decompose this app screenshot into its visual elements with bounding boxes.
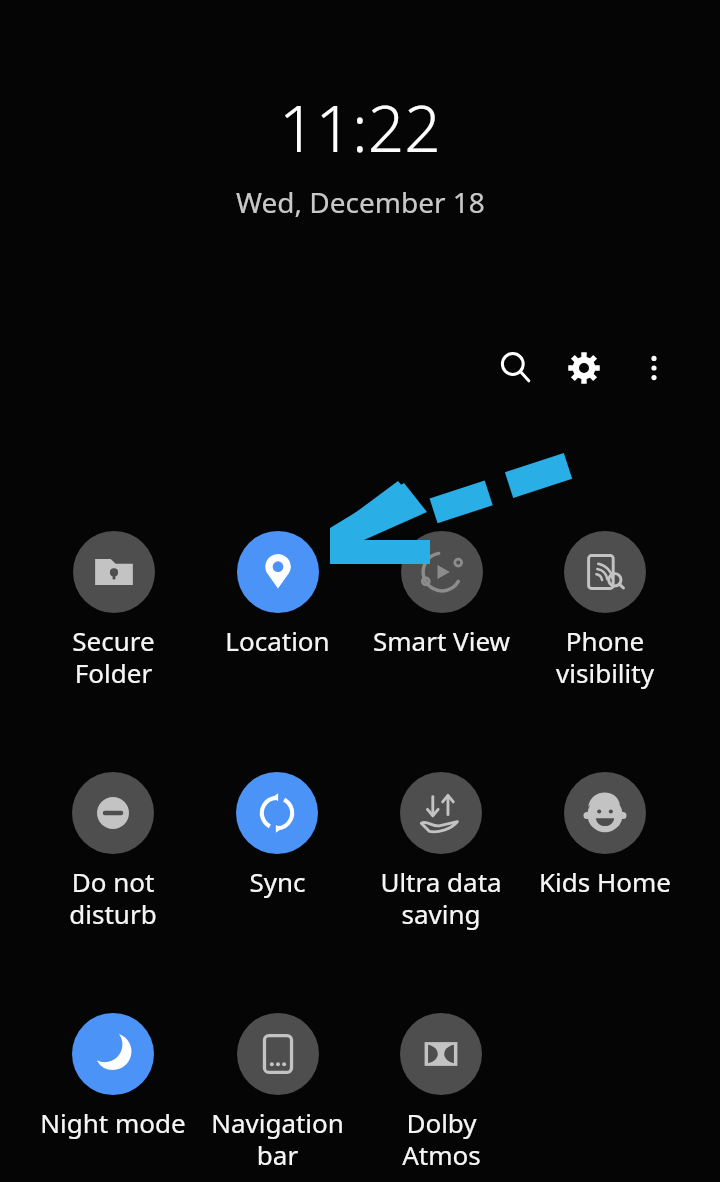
staticText: Ultra data saving bbox=[380, 864, 502, 932]
staticText: Location bbox=[225, 623, 330, 658]
button[interactable]: Night mode bbox=[31, 1013, 195, 1178]
button[interactable]: Smart View bbox=[359, 531, 523, 696]
staticText: Wed, December 18 bbox=[236, 183, 485, 221]
staticText: Navigation bar bbox=[211, 1105, 344, 1173]
button[interactable]: Phone visibility bbox=[523, 531, 687, 696]
button[interactable]: Settings bbox=[556, 340, 612, 396]
button[interactable]: Sync bbox=[195, 772, 359, 937]
button[interactable]: Do not disturb bbox=[31, 772, 195, 937]
button[interactable]: More options bbox=[626, 340, 682, 396]
staticText: Dolby Atmos bbox=[402, 1105, 481, 1173]
button[interactable]: Secure Folder bbox=[31, 531, 195, 696]
staticText: Do not disturb bbox=[69, 864, 157, 932]
button[interactable]: Search bbox=[488, 340, 544, 396]
staticText: 11:22 bbox=[279, 84, 441, 171]
button[interactable]: Kids Home bbox=[523, 772, 687, 937]
staticText: Secure Folder bbox=[72, 623, 155, 691]
button[interactable]: Navigation bar bbox=[195, 1013, 359, 1178]
staticText: Kids Home bbox=[539, 864, 671, 899]
staticText: Phone visibility bbox=[556, 623, 654, 691]
button[interactable]: Ultra data saving bbox=[359, 772, 523, 937]
staticText: Sync bbox=[249, 864, 306, 899]
staticText: Night mode bbox=[40, 1105, 186, 1140]
button[interactable]: Dolby Atmos bbox=[359, 1013, 523, 1178]
staticText: Smart View bbox=[373, 623, 510, 658]
button[interactable]: Location bbox=[195, 531, 359, 696]
